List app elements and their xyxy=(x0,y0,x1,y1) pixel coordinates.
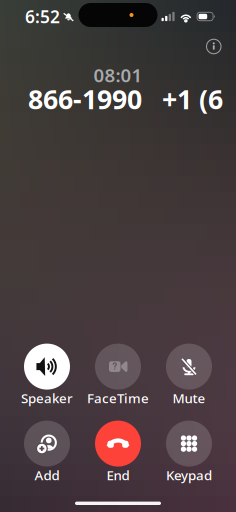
button[interactable]: Call info xyxy=(202,35,225,58)
staticText: +1 (6 xyxy=(162,81,223,117)
button[interactable]: Keypad xyxy=(153,421,224,484)
staticText: FaceTime xyxy=(87,389,149,407)
button[interactable]: FaceTime xyxy=(82,344,153,407)
staticText: 08:01 xyxy=(93,63,142,87)
staticText: 6:52 xyxy=(25,5,60,28)
staticText: End xyxy=(106,466,129,484)
staticText: Keypad xyxy=(166,466,212,484)
button[interactable]: Mute xyxy=(153,344,224,407)
staticText: 866-1990 xyxy=(28,81,142,117)
button[interactable]: Speaker xyxy=(11,344,82,407)
button[interactable]: End xyxy=(82,421,153,484)
staticText: Add xyxy=(34,466,59,484)
button[interactable]: Add xyxy=(11,421,82,484)
staticText: Mute xyxy=(172,389,205,407)
staticText: Speaker xyxy=(21,389,73,407)
